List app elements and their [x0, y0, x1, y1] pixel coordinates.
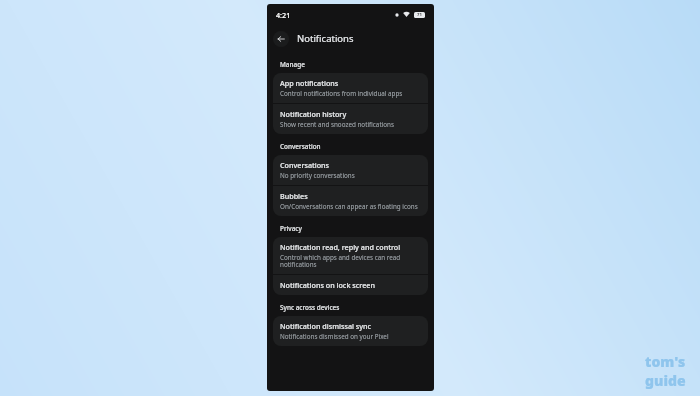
staticText: Conversations: [280, 160, 330, 170]
staticText: guide: [645, 371, 686, 390]
staticText: Notification history: [280, 109, 347, 119]
staticText: Sync across devices: [280, 303, 340, 312]
button[interactable]: Notification read, reply and control: [273, 237, 428, 274]
button[interactable]: Notification history: [273, 104, 428, 134]
staticText: Privacy: [280, 224, 302, 233]
staticText: On/Conversations can appear as floating …: [280, 202, 418, 211]
staticText: Conversation: [280, 142, 321, 151]
staticText: No priority conversations: [280, 171, 355, 180]
button[interactable]: Conversations: [273, 155, 428, 185]
staticText: Manage: [280, 60, 305, 69]
staticText: Bubbles: [280, 191, 308, 201]
button[interactable]: Notification dismissal sync: [273, 316, 428, 346]
staticText: Notifications dismissed on your Pixel: [280, 332, 389, 341]
staticText: Notifications on lock screen: [280, 280, 375, 290]
button[interactable]: Back: [273, 31, 289, 47]
staticText: Notifications: [297, 32, 354, 45]
button[interactable]: App notifications: [273, 73, 428, 103]
staticText: Notification dismissal sync: [280, 321, 372, 331]
staticText: 71: [417, 12, 422, 18]
staticText: 4:21: [276, 10, 291, 20]
staticText: tom's: [645, 352, 686, 371]
button[interactable]: Bubbles: [273, 186, 428, 216]
staticText: Show recent and snoozed notifications: [280, 120, 394, 129]
staticText: Control which apps and devices can read …: [280, 253, 421, 269]
staticText: App notifications: [280, 78, 339, 88]
staticText: Control notifications from individual ap…: [280, 89, 403, 98]
staticText: Notification read, reply and control: [280, 242, 401, 252]
button[interactable]: Notifications on lock screen: [273, 275, 428, 295]
